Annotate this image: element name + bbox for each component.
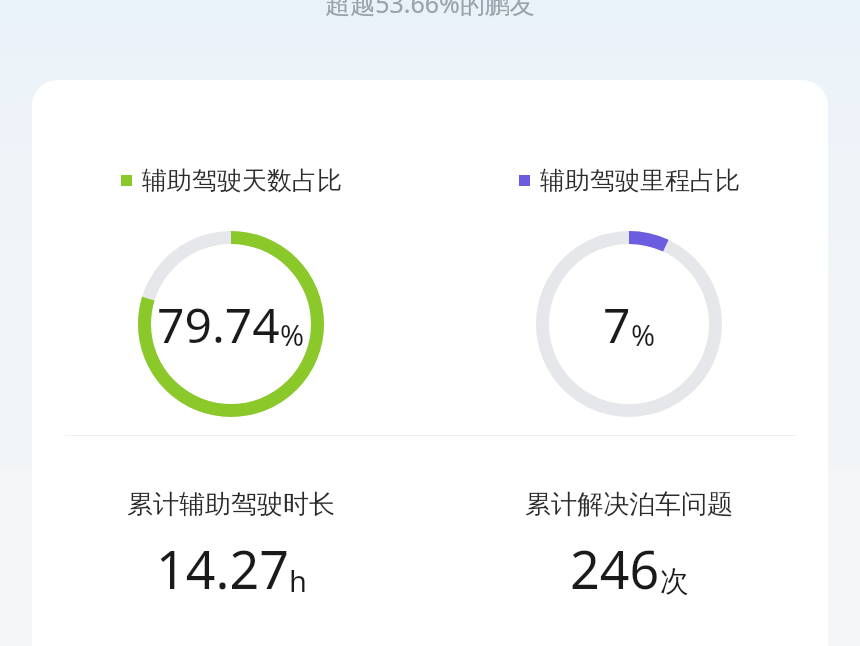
staticText: 超越53.66%的鹏友 bbox=[325, 0, 535, 20]
staticText: % bbox=[631, 315, 656, 354]
staticText: 辅助驾驶里程占比 bbox=[540, 165, 740, 196]
staticText: 累计辅助驾驶时长 bbox=[127, 488, 335, 521]
staticText: % bbox=[280, 315, 305, 354]
staticText: 246 bbox=[570, 533, 660, 604]
button[interactable]: 辅助驾驶天数占比 bbox=[32, 80, 430, 417]
staticText: 辅助驾驶天数占比 bbox=[142, 165, 342, 196]
staticText: 79.74 bbox=[157, 292, 280, 357]
button[interactable]: 辅助驾驶天数占比 bbox=[32, 80, 828, 646]
button[interactable]: 累计辅助驾驶时长 bbox=[32, 488, 430, 604]
button[interactable]: 累计解决泊车问题 bbox=[430, 488, 828, 604]
staticText: 累计解决泊车问题 bbox=[525, 488, 733, 521]
staticText: 次 bbox=[660, 563, 689, 600]
staticText: h bbox=[289, 561, 307, 600]
staticText: 7 bbox=[603, 292, 631, 357]
staticText: 14.27 bbox=[156, 533, 289, 604]
button[interactable]: 辅助驾驶里程占比 bbox=[430, 80, 828, 417]
